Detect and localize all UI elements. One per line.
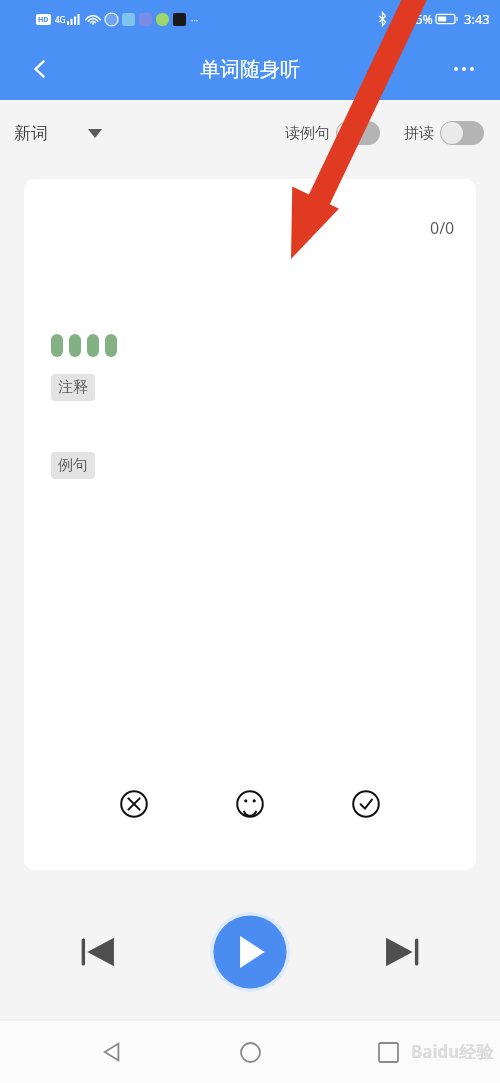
button[interactable]: Back (16, 45, 64, 93)
button[interactable]: Back (86, 1026, 138, 1078)
staticText: 注释 (58, 378, 88, 397)
button[interactable]: More options (440, 45, 488, 93)
button[interactable]: 注释 (58, 378, 88, 397)
button[interactable]: Known (344, 782, 388, 826)
button[interactable]: Play (210, 912, 290, 992)
button[interactable]: Next (374, 924, 430, 980)
staticText: Baidu经验 (411, 1040, 494, 1063)
button[interactable]: Vague (228, 782, 272, 826)
staticText: HD (38, 15, 49, 25)
staticText: 3:43 (464, 10, 490, 28)
staticText: 读例句 (285, 124, 330, 143)
staticText: ··· (191, 14, 199, 26)
button[interactable]: 读例句 (285, 121, 380, 145)
button[interactable]: Home (224, 1026, 276, 1078)
button[interactable]: 新词 (14, 123, 112, 144)
staticText: 新词 (14, 123, 48, 144)
button[interactable]: 例句 (58, 456, 88, 475)
staticText: 拼读 (404, 124, 434, 143)
staticText: 0/0 (430, 217, 455, 239)
staticText: 55% (409, 11, 433, 27)
button[interactable]: Recents (362, 1026, 414, 1078)
staticText: 4G (55, 14, 66, 25)
button[interactable]: 拼读 (404, 121, 484, 145)
staticText: 单词随身听 (200, 57, 300, 82)
button[interactable]: Forgot (112, 782, 156, 826)
button[interactable]: Previous (70, 924, 126, 980)
staticText: 例句 (58, 456, 88, 475)
